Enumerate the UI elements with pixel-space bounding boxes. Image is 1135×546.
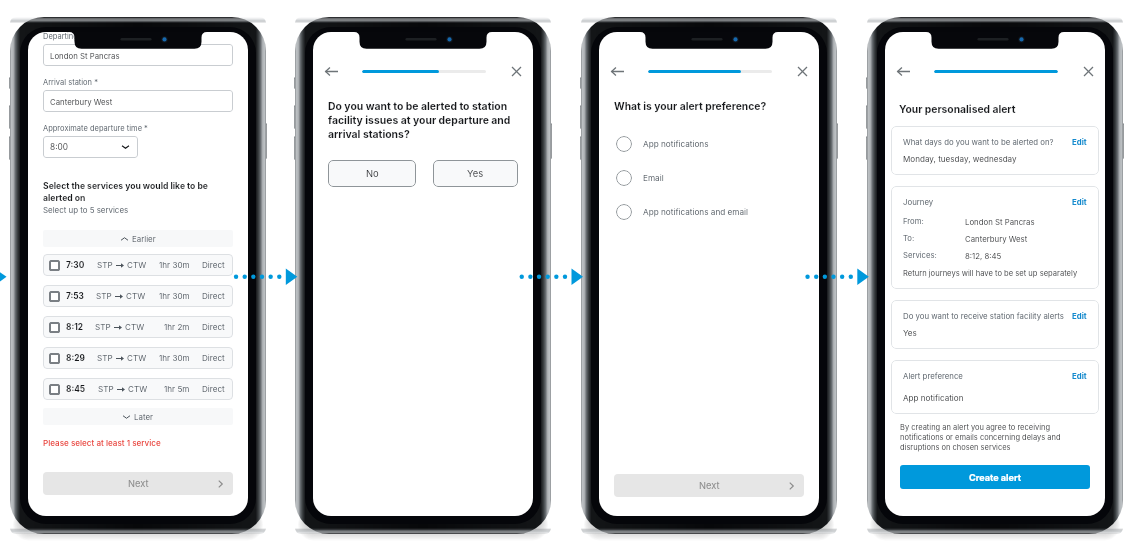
button[interactable]: Create alert	[900, 465, 1090, 489]
staticText: Alert preference	[903, 371, 1072, 380]
staticText: Next	[128, 478, 149, 489]
staticText: 7:53	[66, 291, 84, 301]
button[interactable]: 7:53	[43, 285, 233, 307]
staticText: Create alert	[969, 472, 1022, 483]
staticText: App notifications and email	[643, 207, 749, 217]
button[interactable]: Edit	[1072, 311, 1087, 320]
staticText: 1hr 30m	[159, 353, 190, 363]
button[interactable]: Back	[321, 64, 341, 79]
button[interactable]: London St Pancras	[43, 44, 233, 66]
staticText: App notifications	[643, 139, 709, 149]
staticText: STP	[97, 260, 113, 270]
staticText: London St Pancras	[965, 217, 1035, 226]
button[interactable]: Later	[43, 408, 233, 425]
staticText: Return journeys will have to be set up s…	[903, 269, 1078, 278]
staticText: Select the services you would like to be…	[43, 181, 208, 203]
staticText: Yes	[467, 168, 484, 179]
staticText: Edit	[1072, 197, 1087, 206]
staticText: CTW	[127, 353, 147, 363]
staticText: No	[366, 168, 379, 179]
staticText: Please select at least 1 service	[43, 438, 161, 448]
staticText: By creating an alert you agree to receiv…	[900, 423, 1061, 452]
button[interactable]: Edit	[1072, 371, 1087, 380]
button[interactable]: 8:45	[43, 378, 233, 400]
button[interactable]: Edit	[1072, 137, 1087, 146]
staticText: Direct	[202, 322, 225, 332]
button[interactable]: Next	[614, 474, 804, 497]
staticText: 1hr 5m	[164, 384, 190, 394]
button[interactable]: 7:30	[43, 254, 233, 276]
staticText: 1hr 30m	[159, 291, 190, 301]
staticText: 1hr 2m	[164, 322, 190, 332]
button[interactable]: Close	[793, 64, 812, 79]
button[interactable]: Do you want to receive station facility …	[891, 300, 1099, 349]
button[interactable]: No	[328, 160, 416, 187]
staticText: Direct	[202, 291, 225, 301]
staticText: To:	[903, 234, 915, 243]
staticText: CTW	[128, 384, 148, 394]
button[interactable]: Close	[507, 64, 526, 79]
staticText: London St Pancras	[50, 51, 120, 60]
button[interactable]: 8:00	[43, 136, 138, 158]
button[interactable]: Back	[607, 64, 627, 79]
button[interactable]: What days do you want to be alerted on?	[891, 126, 1099, 175]
button[interactable]: Earlier	[43, 230, 233, 247]
staticText: 8:29	[66, 353, 85, 363]
staticText: Yes	[903, 328, 917, 338]
staticText: Edit	[1072, 137, 1087, 146]
staticText: From:	[903, 217, 924, 226]
staticText: Direct	[202, 260, 225, 270]
staticText: Canterbury West	[965, 234, 1028, 243]
staticText: Edit	[1072, 311, 1087, 320]
button[interactable]: 8:12	[43, 316, 233, 338]
staticText: Direct	[202, 384, 225, 394]
staticText: Services:	[903, 251, 937, 260]
button[interactable]: Edit	[1072, 197, 1087, 206]
staticText: Select up to 5 services	[43, 205, 129, 215]
staticText: CTW	[125, 322, 145, 332]
button[interactable]: Yes	[433, 160, 518, 187]
staticText: STP	[97, 353, 113, 363]
button[interactable]: Back	[893, 64, 913, 79]
staticText: Your personalised alert	[899, 103, 1016, 115]
button[interactable]: 8:29	[43, 347, 233, 369]
staticText: CTW	[127, 260, 147, 270]
staticText: 7:30	[66, 260, 85, 270]
staticText: Journey	[903, 197, 1072, 206]
button[interactable]: Journey	[891, 186, 1099, 289]
staticText: Email	[643, 173, 664, 183]
button[interactable]: Email	[616, 170, 804, 186]
button[interactable]: App notifications	[616, 136, 804, 152]
staticText: STP	[96, 291, 112, 301]
staticText: CTW	[126, 291, 146, 301]
staticText: What is your alert preference?	[614, 100, 767, 112]
button[interactable]: Next	[43, 472, 233, 495]
staticText: Canterbury West	[50, 97, 113, 106]
button[interactable]: Alert preference	[891, 360, 1099, 414]
staticText: Earlier	[132, 234, 156, 244]
staticText: Do you want to be alerted to station fac…	[328, 100, 511, 141]
staticText: Monday, tuesday, wednesday	[903, 154, 1017, 164]
staticText: Do you want to receive station facility …	[903, 311, 1072, 320]
button[interactable]: Close	[1079, 64, 1098, 79]
staticText: App notification	[903, 393, 964, 403]
staticText: STP	[98, 384, 114, 394]
staticText: Edit	[1072, 371, 1087, 380]
staticText: Later	[134, 412, 153, 422]
staticText: Approximate departure time *	[43, 124, 148, 133]
button[interactable]: Canterbury West	[43, 90, 233, 112]
staticText: Direct	[202, 353, 225, 363]
staticText: 8:12	[66, 322, 83, 332]
staticText: Arrival station *	[43, 78, 98, 87]
staticText: 8:45	[66, 384, 86, 394]
staticText: 8:12, 8:45	[965, 251, 1002, 260]
staticText: STP	[95, 322, 111, 332]
staticText: 8:00	[50, 142, 68, 152]
button[interactable]: App notifications and email	[616, 204, 804, 220]
staticText: Next	[699, 480, 720, 491]
staticText: Departing station *	[43, 32, 110, 41]
staticText: 1hr 30m	[159, 260, 190, 270]
staticText: What days do you want to be alerted on?	[903, 137, 1072, 146]
